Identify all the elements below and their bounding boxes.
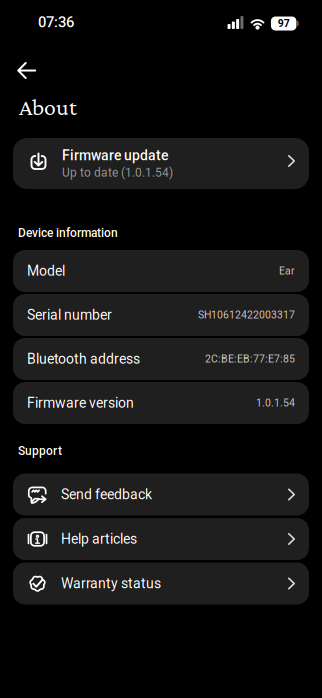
staticText: 1.0.1.54 <box>256 397 295 409</box>
staticText: 97 <box>278 17 290 30</box>
button[interactable]: Send feedback <box>13 473 309 515</box>
button[interactable]: Warranty status <box>13 562 309 604</box>
staticText: Ear <box>279 265 295 277</box>
staticText: Support <box>18 444 62 458</box>
staticText: Firmware version <box>27 395 134 411</box>
staticText: Warranty status <box>61 575 161 592</box>
staticText: 07:36 <box>38 14 74 31</box>
staticText: About <box>19 94 77 120</box>
button[interactable]: Firmware update <box>13 138 309 189</box>
staticText: Up to date (1.0.1.54) <box>62 166 173 180</box>
staticText: Serial number <box>27 307 112 323</box>
staticText: Model <box>27 263 65 279</box>
button[interactable]: Help articles <box>13 518 309 560</box>
staticText: Help articles <box>61 531 137 547</box>
staticText: Device information <box>18 226 118 240</box>
staticText: Firmware update <box>62 147 168 164</box>
staticText: Send feedback <box>61 486 152 503</box>
staticText: SH10612422003317 <box>198 309 295 321</box>
button[interactable]: Back <box>11 56 42 85</box>
staticText: 2C:BE:EB:77:E7:85 <box>205 353 295 365</box>
staticText: Bluetooth address <box>27 351 140 367</box>
